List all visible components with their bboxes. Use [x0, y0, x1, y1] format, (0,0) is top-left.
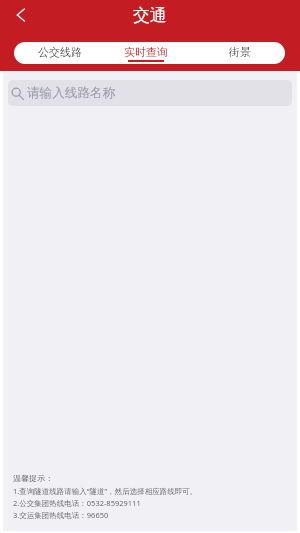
staticText: 实时查询: [124, 45, 168, 59]
button[interactable]: 公交线路: [14, 42, 105, 64]
button[interactable]: 实时查询: [105, 42, 195, 64]
staticText: 温馨提示：: [13, 473, 53, 483]
staticText: 2.公交集团热线电话：0532-85929111: [13, 498, 141, 508]
staticText: 3.交运集团热线电话：96650: [13, 510, 109, 520]
staticText: 请输入线路名称: [27, 85, 116, 101]
staticText: 1.查询隧道线路请输入“隧道”，然后选择相应路线即可。: [13, 486, 198, 496]
staticText: 交通: [133, 5, 167, 26]
button[interactable]: 请输入线路名称: [8, 80, 292, 106]
staticText: 街景: [229, 45, 251, 59]
button[interactable]: Back: [7, 3, 31, 27]
staticText: 公交线路: [38, 45, 82, 59]
button[interactable]: 街景: [195, 42, 285, 64]
